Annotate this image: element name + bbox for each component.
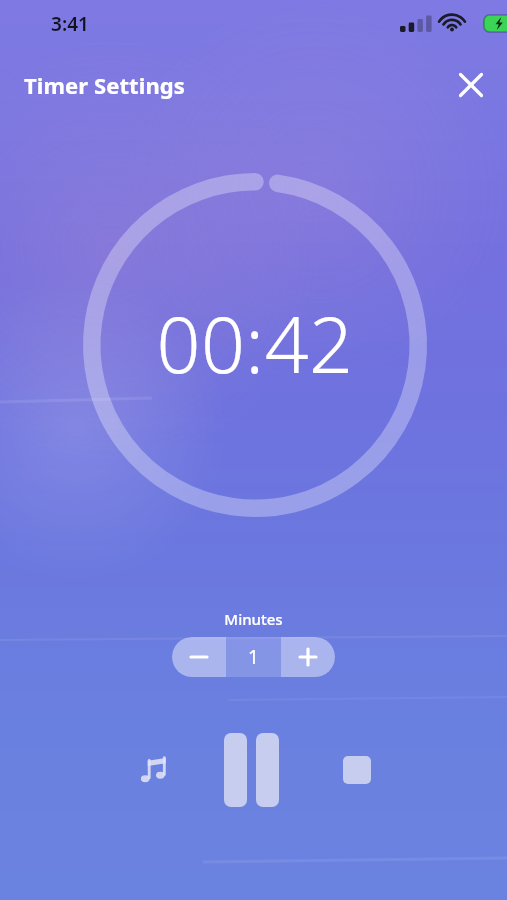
- staticText: 1: [248, 644, 259, 670]
- button[interactable]: Increase minutes: [281, 637, 335, 677]
- staticText: 00:42: [156, 291, 354, 396]
- staticText: 3:41: [51, 11, 89, 37]
- button[interactable]: Stop: [331, 744, 383, 796]
- staticText: Minutes: [224, 609, 283, 629]
- button[interactable]: Sound: [128, 742, 184, 798]
- button[interactable]: Decrease minutes: [172, 637, 226, 677]
- button[interactable]: Pause: [224, 728, 286, 812]
- button[interactable]: Close: [451, 65, 491, 105]
- staticText: Timer Settings: [24, 70, 185, 100]
